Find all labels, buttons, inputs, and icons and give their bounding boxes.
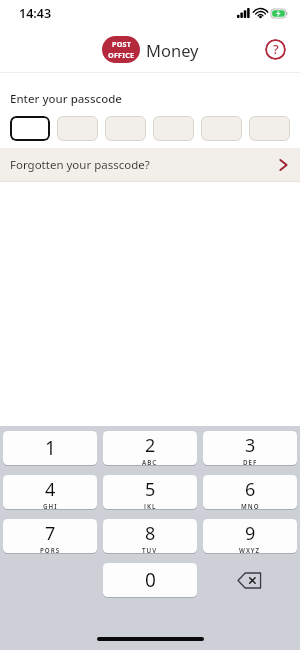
button[interactable]: Forgotten your passcode? [0, 148, 300, 181]
staticText: GHI [43, 502, 58, 509]
staticText: WXYZ [239, 546, 261, 553]
staticText: MNO [241, 502, 260, 509]
staticText: 4 [45, 477, 56, 502]
button[interactable] [153, 116, 194, 141]
button[interactable] [105, 116, 146, 141]
button[interactable]: Help [265, 39, 286, 60]
staticText: ABC [142, 458, 158, 465]
button[interactable]: 5 [103, 475, 197, 509]
staticText: Forgotten your passcode? [10, 157, 150, 173]
button[interactable] [249, 116, 290, 141]
button[interactable]: 7 [3, 519, 97, 553]
staticText: 6 [245, 477, 256, 502]
staticText: 3 [245, 433, 256, 458]
button[interactable] [201, 116, 242, 141]
staticText: PQRS [40, 546, 61, 553]
staticText: Enter your passcode [10, 91, 122, 107]
staticText: ? [273, 41, 279, 58]
staticText: 9 [245, 521, 256, 546]
staticText: POST [112, 39, 132, 49]
staticText: TUV [142, 546, 158, 553]
staticText: OFFICE [108, 50, 135, 60]
staticText: DEF [243, 458, 258, 465]
staticText: Money [146, 39, 199, 61]
staticText: 8 [145, 521, 156, 546]
staticText: 5 [145, 477, 156, 502]
staticText: 7 [45, 521, 56, 546]
button[interactable] [10, 116, 50, 141]
staticText: JKL [144, 502, 157, 509]
staticText: 1 [45, 435, 56, 461]
staticText: 2 [145, 433, 156, 458]
button[interactable]: 4 [3, 475, 97, 509]
staticText: 14:43 [19, 5, 52, 22]
button[interactable] [57, 116, 98, 141]
button[interactable]: 6 [203, 475, 297, 509]
button[interactable]: 0 [103, 563, 197, 597]
button[interactable]: Delete [203, 563, 297, 598]
button[interactable]: 8 [103, 519, 197, 553]
button[interactable]: 1 [3, 431, 97, 465]
staticText: 0 [145, 567, 156, 593]
button[interactable]: 9 [203, 519, 297, 553]
button[interactable]: 3 [203, 431, 297, 465]
button[interactable]: 2 [103, 431, 197, 465]
